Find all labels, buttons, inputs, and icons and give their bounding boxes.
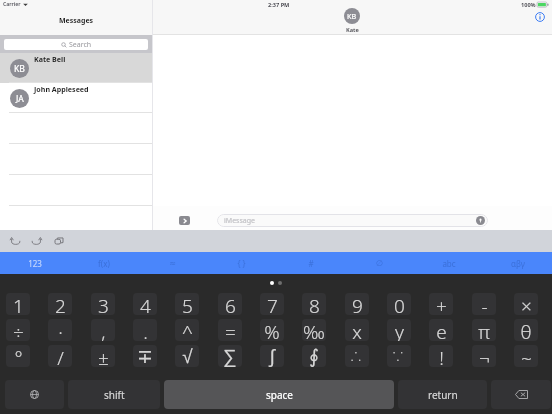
button[interactable]: ! <box>429 345 453 367</box>
staticText: ‰ <box>303 319 325 341</box>
staticText: ~ <box>521 345 532 367</box>
button[interactable]: · <box>48 319 72 341</box>
button[interactable]: abc <box>414 252 483 274</box>
button[interactable]: × <box>514 293 538 315</box>
button[interactable]: KB <box>0 53 152 83</box>
button[interactable]: + <box>429 293 453 315</box>
button[interactable]: Paste <box>49 230 68 252</box>
staticText: ^ <box>182 319 193 341</box>
staticText: 2 <box>55 293 66 315</box>
button[interactable]: KB <box>344 8 360 24</box>
staticText: θ <box>520 319 532 341</box>
button[interactable]: π <box>472 319 496 341</box>
button[interactable]: space <box>164 380 394 409</box>
staticText: f(x) <box>98 258 110 269</box>
button[interactable]: ∫ <box>260 345 284 367</box>
button[interactable]: Undo <box>5 230 24 252</box>
staticText: ∫ <box>269 346 275 367</box>
staticText: , <box>101 319 106 341</box>
staticText: . <box>143 319 148 341</box>
button[interactable]: Details <box>535 12 545 22</box>
button[interactable]: Record audio <box>476 216 485 225</box>
button[interactable]: 6 <box>218 293 242 315</box>
staticText: αβγ <box>511 258 525 269</box>
button[interactable]: Backspace <box>491 380 551 409</box>
button[interactable]: ∵ <box>387 345 411 367</box>
button[interactable]: 4 <box>133 293 157 315</box>
staticText: 1 <box>13 293 24 315</box>
staticText: e <box>436 319 447 341</box>
staticText: ° <box>14 345 23 367</box>
staticText: 7 <box>267 293 278 315</box>
button[interactable]: 9 <box>345 293 369 315</box>
button[interactable]: ~ <box>514 345 538 367</box>
button[interactable]: Search <box>4 39 148 50</box>
staticText: + <box>436 293 447 315</box>
staticText: ≈ <box>169 259 176 268</box>
staticText: John Appleseed <box>34 84 89 94</box>
button[interactable]: 8 <box>302 293 326 315</box>
staticText: return <box>428 388 458 402</box>
button[interactable]: 123 <box>0 252 69 274</box>
button[interactable]: x <box>345 319 369 341</box>
button[interactable]: αβγ <box>483 252 552 274</box>
button[interactable]: ∮ <box>302 345 326 367</box>
button[interactable]: Redo <box>27 230 46 252</box>
staticText: 123 <box>28 258 42 269</box>
button[interactable]: 1 <box>6 293 30 315</box>
button[interactable]: JA <box>0 83 152 113</box>
button[interactable]: - <box>472 293 496 315</box>
button[interactable]: return <box>398 380 487 409</box>
staticText: ! <box>439 345 444 367</box>
button[interactable]: e <box>429 319 453 341</box>
button[interactable]: , <box>91 319 115 341</box>
button[interactable]: ¬ <box>472 345 496 367</box>
staticText: KB <box>14 63 25 75</box>
staticText: × <box>521 293 532 315</box>
button[interactable]: Switch keyboard <box>5 380 64 409</box>
button[interactable]: 0 <box>387 293 411 315</box>
staticText: 100% <box>521 1 536 9</box>
staticText: ÷ <box>13 319 24 341</box>
button[interactable]: % <box>260 319 284 341</box>
button[interactable]: shift <box>68 380 160 409</box>
staticText: 4 <box>140 293 151 315</box>
staticText: Search <box>69 40 92 50</box>
button[interactable]: f(x) <box>69 252 138 274</box>
button[interactable]: θ <box>514 319 538 341</box>
staticText: = <box>225 319 236 341</box>
button[interactable]: / <box>48 345 72 367</box>
button[interactable]: ± <box>91 345 115 367</box>
button[interactable]: 5 <box>175 293 199 315</box>
button[interactable]: 3 <box>91 293 115 315</box>
staticText: # <box>308 258 314 269</box>
button[interactable]: iMessage <box>217 214 488 227</box>
button[interactable]: ∓ <box>133 345 157 367</box>
button[interactable]: y <box>387 319 411 341</box>
staticText: % <box>264 319 280 341</box>
staticText: x <box>352 319 362 341</box>
button[interactable]: ∴ <box>345 345 369 367</box>
staticText: π <box>478 319 490 341</box>
staticText: · <box>58 319 63 341</box>
staticText: 5 <box>182 293 193 315</box>
button[interactable]: 7 <box>260 293 284 315</box>
staticText: 3 <box>98 293 109 315</box>
button[interactable]: ‰ <box>302 319 326 341</box>
button[interactable]: Apps <box>179 216 190 225</box>
button[interactable]: ° <box>6 345 30 367</box>
button[interactable]: = <box>218 319 242 341</box>
staticText: JA <box>16 93 24 105</box>
button[interactable]: √ <box>175 345 199 367</box>
button[interactable]: ∑ <box>218 345 242 367</box>
button[interactable]: 2 <box>48 293 72 315</box>
button[interactable]: ÷ <box>6 319 30 341</box>
staticText: Carrier <box>3 1 21 8</box>
staticText: Kate <box>346 26 359 34</box>
button[interactable]: ^ <box>175 319 199 341</box>
button[interactable]: . <box>133 319 157 341</box>
